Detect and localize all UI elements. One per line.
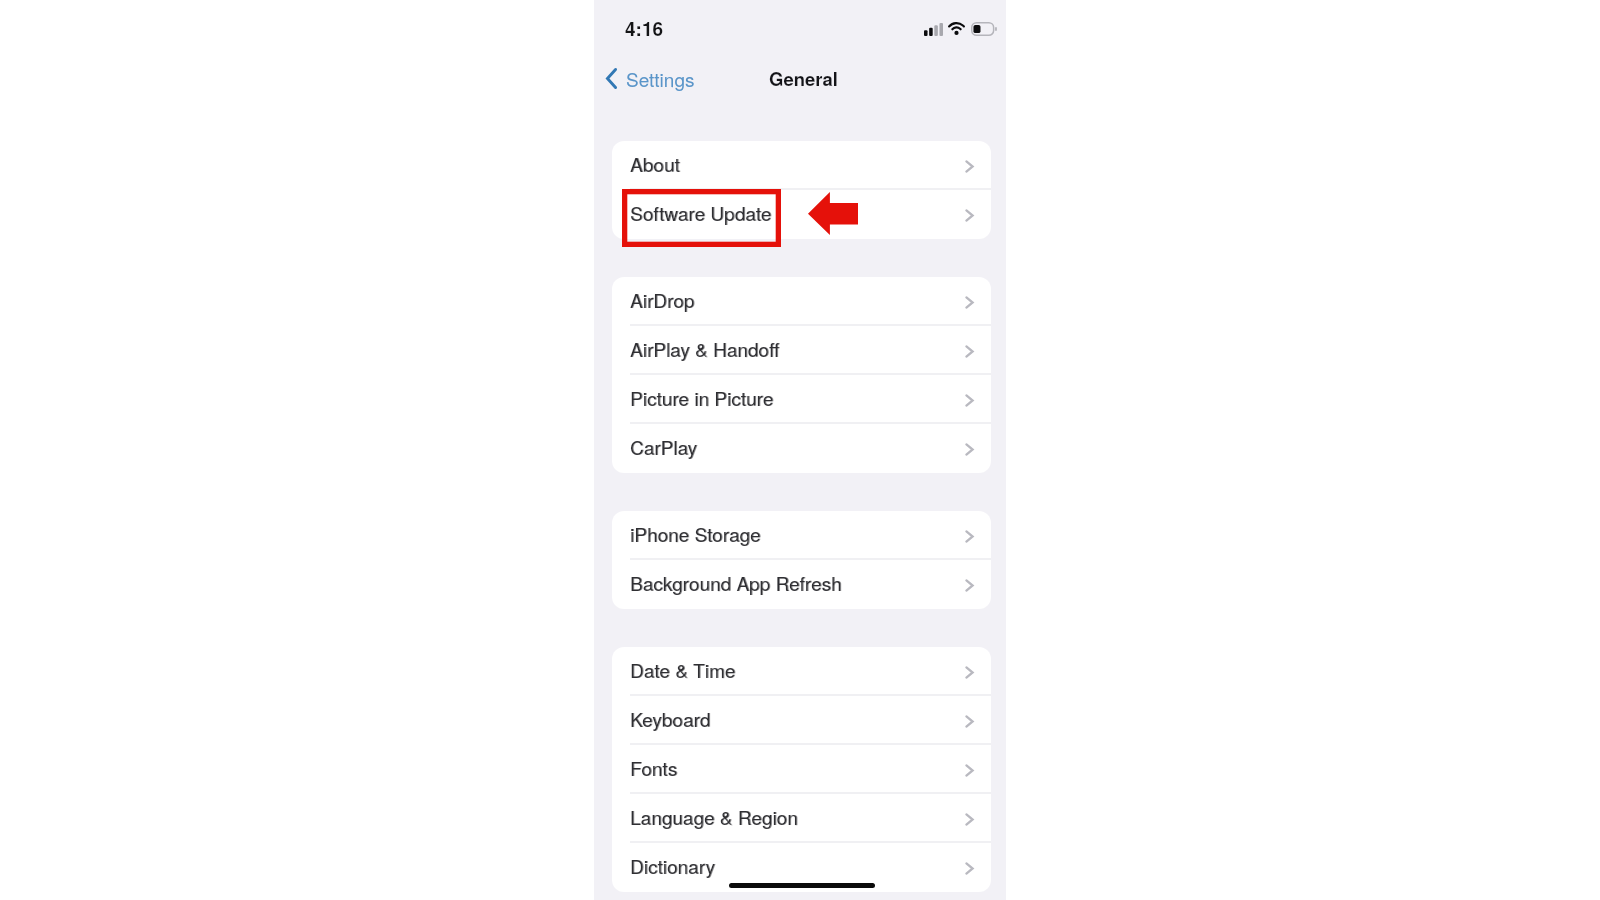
- staticText: CarPlay: [630, 433, 698, 460]
- staticText: Fonts: [631, 754, 679, 781]
- button[interactable]: AirPlay & Handoff: [612, 326, 991, 375]
- staticText: Picture in Picture: [631, 384, 775, 411]
- button[interactable]: Fonts: [612, 745, 991, 794]
- button[interactable]: Picture in Picture: [612, 375, 991, 424]
- staticText: 4:16: [625, 15, 664, 42]
- staticText: Date & Time: [631, 656, 737, 683]
- button[interactable]: Background App Refresh: [612, 560, 991, 609]
- staticText: AirPlay & Handoff: [630, 335, 780, 362]
- button[interactable]: Software Update: [612, 190, 991, 239]
- button[interactable]: Keyboard: [612, 696, 991, 745]
- button[interactable]: CarPlay: [612, 424, 991, 473]
- button[interactable]: Dictionary: [612, 843, 991, 892]
- staticText: Software Update: [630, 199, 772, 226]
- staticText: About: [631, 150, 681, 177]
- staticText: Date & Time: [630, 656, 736, 683]
- staticText: Dictionary: [630, 852, 715, 879]
- staticText: Keyboard: [631, 705, 712, 732]
- staticText: General: [769, 65, 838, 91]
- staticText: iPhone Storage: [631, 520, 762, 547]
- button[interactable]: Back to Settings: [606, 65, 695, 92]
- staticText: Language & Region: [630, 803, 798, 830]
- button[interactable]: AirDrop: [612, 277, 991, 326]
- staticText: Language & Region: [631, 803, 799, 830]
- staticText: Background App Refresh: [631, 569, 843, 596]
- staticText: AirPlay & Handoff: [631, 335, 781, 362]
- staticText: Dictionary: [631, 852, 716, 879]
- staticText: Picture in Picture: [630, 384, 774, 411]
- staticText: iPhone Storage: [630, 520, 761, 547]
- button[interactable]: Language & Region: [612, 794, 991, 843]
- staticText: Fonts: [630, 754, 678, 781]
- staticText: AirDrop: [631, 286, 696, 313]
- button[interactable]: About: [612, 141, 991, 190]
- staticText: About: [630, 150, 680, 177]
- staticText: Software Update: [631, 199, 773, 226]
- staticText: CarPlay: [631, 433, 699, 460]
- staticText: Background App Refresh: [630, 569, 842, 596]
- staticText: Keyboard: [630, 705, 711, 732]
- staticText: Settings: [626, 65, 695, 92]
- button[interactable]: Date & Time: [612, 647, 991, 696]
- button[interactable]: iPhone Storage: [612, 511, 991, 560]
- staticText: AirDrop: [630, 286, 695, 313]
